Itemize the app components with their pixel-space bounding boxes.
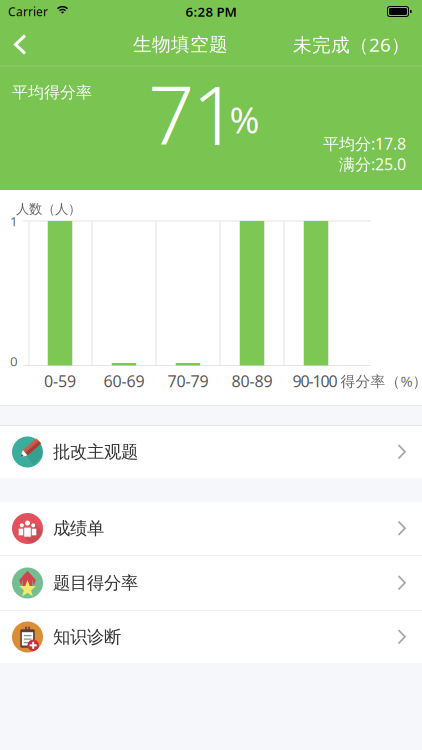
button[interactable]: 批改主观题 (0, 426, 422, 478)
staticText: Carrier (8, 3, 48, 19)
staticText: 成绩单 (53, 518, 104, 539)
staticText: 71 (148, 59, 238, 167)
staticText: 批改主观题 (53, 441, 138, 463)
staticText: 生物填空题 (133, 33, 228, 56)
staticText: 60-69 (103, 370, 144, 392)
staticText: 70-79 (167, 370, 208, 392)
button[interactable]: 成绩单 (0, 502, 422, 555)
button[interactable] (6, 29, 36, 59)
staticText: 人数（人） (16, 201, 81, 217)
button[interactable]: 知识诊断 (0, 611, 422, 663)
staticText: 平均分:17.8 (323, 133, 406, 154)
staticText: 0-59 (44, 370, 76, 392)
staticText: 满分:25.0 (339, 153, 406, 175)
staticText: 平均得分率 (12, 83, 92, 102)
staticText: 80-89 (231, 370, 272, 392)
staticText: 6:28 PM (185, 3, 236, 20)
staticText: 题目得分率 (53, 572, 138, 594)
staticText: 未完成（26） (293, 32, 410, 57)
staticText: 1 (10, 212, 18, 230)
button[interactable]: 未完成（26） (280, 32, 410, 57)
staticText: % (229, 96, 259, 143)
staticText: 知识诊断 (53, 626, 121, 648)
staticText: 90-100 (292, 370, 337, 392)
staticText: 0 (10, 352, 18, 370)
staticText: 得分率（%） (340, 371, 422, 391)
button[interactable]: 题目得分率 (0, 556, 422, 610)
